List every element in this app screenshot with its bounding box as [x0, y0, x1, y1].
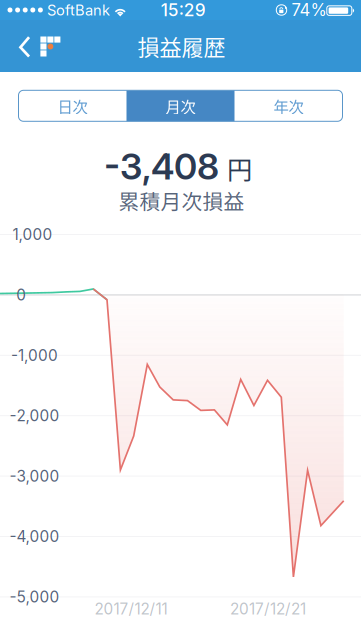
button[interactable]: Back	[0, 20, 74, 72]
staticText: 年次	[273, 95, 303, 117]
staticText: -2,000	[9, 406, 59, 425]
staticText: 74%	[291, 0, 326, 20]
staticText: 2017/12/11	[94, 600, 167, 618]
staticText: 1,000	[12, 225, 52, 244]
staticText: SoftBank	[47, 1, 110, 19]
button[interactable]: 年次	[234, 90, 342, 121]
staticText: -5,000	[9, 588, 59, 606]
staticText: -3,408	[104, 145, 219, 188]
staticText: -3,000	[9, 467, 59, 485]
staticText: 円	[227, 150, 252, 187]
staticText: 2017/12/21	[230, 600, 306, 618]
staticText: 0	[16, 286, 26, 304]
staticText: -1,000	[11, 346, 58, 365]
staticText: 月次	[165, 95, 195, 117]
staticText: -4,000	[9, 527, 59, 546]
button[interactable]: 月次	[126, 90, 234, 121]
staticText: 日次	[57, 95, 87, 117]
staticText: 累積月次損益	[118, 185, 244, 215]
staticText: 15:29	[161, 0, 206, 20]
staticText: 損益履歴	[137, 30, 225, 62]
button[interactable]: 日次	[18, 90, 126, 121]
